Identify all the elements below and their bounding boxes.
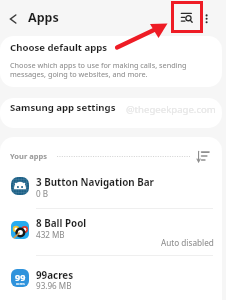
staticText: 432 MB (36, 229, 65, 240)
button[interactable]: Sort (193, 146, 213, 166)
staticText: @thegeekpage.com (126, 103, 216, 116)
staticText: 93.96 MB (36, 280, 72, 291)
staticText: Your apps (10, 151, 47, 161)
button[interactable]: 99 (0, 256, 226, 300)
button[interactable]: Back (2, 8, 24, 30)
staticText: Auto disabled (161, 237, 214, 248)
staticText: 99 (15, 271, 26, 283)
staticText: Apps (28, 9, 59, 26)
staticText: acres (16, 281, 25, 286)
button[interactable]: 3 Button Navigation Bar (0, 161, 226, 208)
staticText: 99acres (36, 269, 74, 282)
button[interactable]: 8 Ball Pool (0, 209, 226, 255)
staticText: Choose which apps to use for making call… (10, 60, 187, 80)
staticText: 8 Ball Pool (36, 217, 87, 230)
button[interactable]: Search apps (174, 4, 200, 30)
staticText: Samsung app settings (10, 101, 116, 114)
button[interactable]: Choose default apps (0, 36, 222, 87)
staticText: Choose default apps (10, 41, 108, 54)
staticText: 3 Button Navigation Bar (36, 176, 154, 189)
staticText: 0 B (36, 188, 48, 199)
button[interactable]: More options (199, 4, 215, 34)
button[interactable]: Samsung app settings (0, 98, 222, 128)
